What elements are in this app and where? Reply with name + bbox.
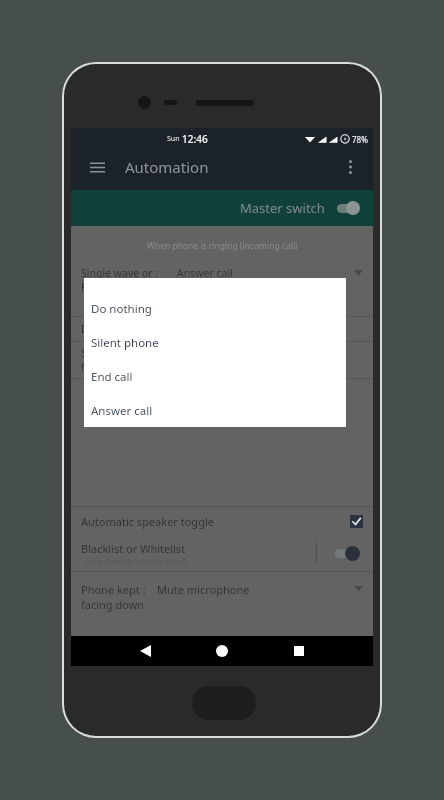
staticText: Answer call (177, 266, 233, 280)
staticText: S (81, 346, 87, 360)
staticText: D (81, 322, 89, 336)
staticText: Silent phone (91, 335, 159, 351)
button[interactable]: Home (207, 636, 237, 666)
staticText: Answer call (91, 403, 153, 419)
staticText: Master switch (240, 199, 325, 217)
button[interactable]: Automatic speaker toggle (81, 507, 363, 535)
staticText: When phone is ringing (incoming call) (147, 240, 298, 252)
button[interactable]: Do nothing (84, 292, 346, 326)
staticText: fla (81, 360, 94, 374)
staticText: Automation (125, 157, 209, 177)
staticText: Mute microphone (157, 582, 250, 597)
button[interactable]: Blacklist or Whitelist (81, 535, 363, 571)
staticText: facing down (81, 597, 145, 612)
button[interactable]: Recent apps (284, 636, 314, 666)
staticText: Sun (167, 134, 182, 144)
button[interactable]: Master switch (71, 190, 373, 226)
staticText: Phone kept : (81, 582, 146, 597)
button[interactable]: Open navigation menu (79, 149, 115, 185)
button[interactable]: More options (333, 150, 367, 184)
button[interactable]: Back (130, 636, 160, 666)
staticText: Single wave or : (81, 266, 159, 280)
button[interactable]: End call (84, 360, 346, 394)
staticText: Do nothing (91, 301, 152, 317)
staticText: Blacklist or Whitelist (81, 541, 186, 556)
button[interactable]: Single wave or : (81, 266, 363, 294)
staticText: Automatic speaker toggle (81, 514, 214, 529)
staticText: End call (91, 369, 133, 385)
button[interactable]: Answer call (84, 394, 346, 427)
button[interactable]: Silent phone (84, 326, 346, 360)
button[interactable]: Phone kept : (81, 582, 363, 612)
staticText: 78% (352, 134, 368, 145)
staticText: 12:46 (182, 132, 208, 146)
staticText: Put on ear (81, 280, 133, 294)
